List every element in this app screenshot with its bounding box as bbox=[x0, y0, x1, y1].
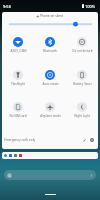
staticText: Do not disturb bbox=[72, 49, 93, 53]
button[interactable]: ASUS_C4B0 bbox=[2, 37, 34, 57]
staticText: 9:56 bbox=[3, 4, 11, 9]
button[interactable]: Bluetooth bbox=[34, 37, 66, 57]
button[interactable]: No SIM card bbox=[2, 102, 34, 122]
button[interactable]: Auto-rotate bbox=[34, 70, 66, 90]
staticText: Phone on silent bbox=[40, 14, 64, 18]
staticText: Flashlight bbox=[11, 82, 25, 86]
button[interactable]: Do not disturb bbox=[66, 37, 98, 57]
staticText: No SIM card bbox=[9, 114, 27, 118]
staticText: Battery Saver bbox=[73, 82, 92, 86]
button[interactable]: Flashlight bbox=[2, 70, 34, 90]
button[interactable]: Edit bbox=[81, 137, 87, 143]
button[interactable]: Night Light bbox=[66, 102, 98, 122]
staticText: Bluetooth bbox=[43, 49, 57, 53]
button[interactable]: Airplane mode bbox=[34, 102, 66, 122]
staticText: Auto-rotate bbox=[42, 82, 59, 86]
staticText: 100% bbox=[85, 4, 96, 9]
staticText: Airplane mode bbox=[40, 114, 61, 118]
staticText: ASUS_C4B0 bbox=[10, 49, 27, 53]
staticText: Emergency calls only bbox=[4, 138, 36, 142]
staticText: G bbox=[8, 173, 11, 178]
button[interactable]: Battery Saver bbox=[66, 70, 98, 90]
button[interactable]: Settings bbox=[89, 137, 95, 143]
button[interactable]: G bbox=[4, 170, 96, 180]
button[interactable] bbox=[2, 152, 98, 159]
staticText: Night Light bbox=[74, 114, 90, 118]
